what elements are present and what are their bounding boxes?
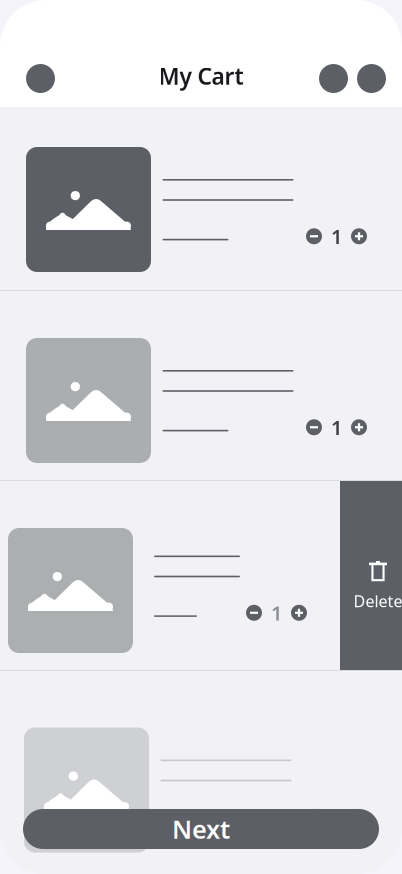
- button[interactable]: Increase quantity: [351, 228, 367, 244]
- button[interactable]: Decrease quantity: [246, 605, 262, 621]
- staticText: Next: [172, 812, 230, 846]
- staticText: 1: [331, 223, 342, 250]
- button[interactable]: Decrease quantity: [306, 419, 322, 435]
- button[interactable]: Next: [23, 809, 379, 849]
- button[interactable]: 1: [0, 671, 402, 860]
- button[interactable]: Decrease quantity: [306, 228, 322, 244]
- button[interactable]: More options: [357, 64, 386, 93]
- button[interactable]: Back: [26, 64, 55, 93]
- staticText: 1: [331, 803, 342, 830]
- button[interactable]: 1: [0, 291, 402, 480]
- button[interactable]: Increase quantity: [351, 809, 367, 825]
- button[interactable]: Increase quantity: [291, 605, 307, 621]
- button[interactable]: Increase quantity: [351, 419, 367, 435]
- button[interactable]: Delete item: [340, 481, 402, 670]
- button[interactable]: 1: [0, 107, 402, 290]
- staticText: My Cart: [158, 61, 243, 91]
- staticText: 1: [331, 414, 342, 441]
- staticText: 1: [271, 599, 282, 626]
- button[interactable]: Search: [319, 64, 348, 93]
- staticText: Delete: [353, 590, 402, 612]
